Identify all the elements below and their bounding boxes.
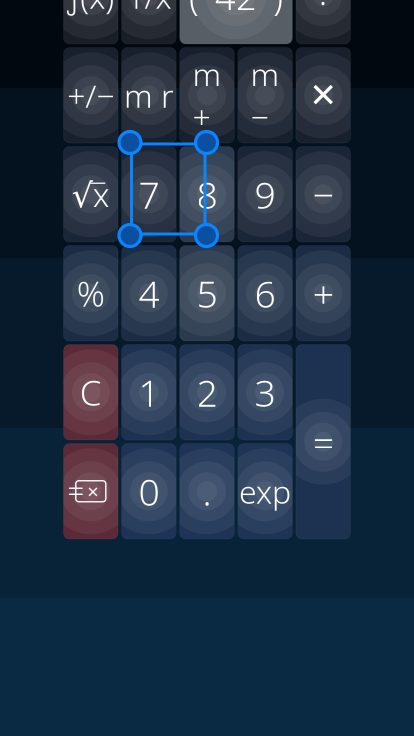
- staticText: 0: [138, 466, 159, 516]
- staticText: 1/x: [126, 0, 171, 17]
- staticText: exp: [239, 470, 291, 512]
- staticText: 42: [215, 0, 257, 20]
- staticText: C: [80, 369, 102, 415]
- button[interactable]: √x: [63, 146, 118, 242]
- staticText: −: [313, 169, 334, 219]
- button[interactable]: −: [296, 146, 350, 242]
- staticText: +: [313, 268, 334, 318]
- staticText: m r: [124, 74, 174, 116]
- button[interactable]: 9: [238, 146, 292, 242]
- staticText: ÷: [313, 0, 334, 20]
- staticText: ×: [87, 478, 98, 505]
- button[interactable]: 0: [122, 443, 176, 539]
- button[interactable]: +/−: [63, 47, 118, 143]
- button[interactable]: m −: [238, 47, 292, 143]
- staticText: (: [189, 0, 199, 20]
- button[interactable]: .: [180, 443, 234, 539]
- button[interactable]: 1: [122, 344, 176, 440]
- staticText: +/−: [67, 74, 114, 116]
- button[interactable]: %: [63, 245, 118, 341]
- staticText: 8: [196, 169, 217, 219]
- button[interactable]: 2: [180, 344, 234, 440]
- staticText: %: [77, 270, 105, 316]
- button[interactable]: 4: [122, 245, 176, 341]
- button[interactable]: =: [296, 344, 350, 539]
- staticText: 1: [138, 367, 159, 417]
- staticText: 4: [138, 268, 159, 318]
- staticText: √x: [72, 172, 110, 216]
- staticText: ✕: [309, 76, 337, 114]
- button[interactable]: C: [63, 344, 118, 440]
- staticText: 7: [138, 169, 159, 219]
- staticText: ƒ(x): [67, 0, 114, 17]
- staticText: ): [273, 0, 283, 20]
- button[interactable]: ✕: [296, 47, 350, 143]
- staticText: 2: [196, 367, 217, 417]
- button[interactable]: 8: [180, 146, 234, 242]
- button[interactable]: (: [180, 0, 292, 44]
- staticText: m +: [192, 53, 221, 138]
- staticText: 6: [255, 268, 276, 318]
- button[interactable]: m r: [122, 47, 176, 143]
- button[interactable]: ƒ(x): [63, 0, 118, 44]
- button[interactable]: Delete: [63, 443, 118, 539]
- staticText: 3: [255, 367, 276, 417]
- button[interactable]: 5: [180, 245, 234, 341]
- button[interactable]: m +: [180, 47, 234, 143]
- button[interactable]: exp: [238, 443, 292, 539]
- staticText: =: [313, 417, 334, 467]
- button[interactable]: ÷: [296, 0, 350, 44]
- button[interactable]: 7: [122, 146, 176, 242]
- staticText: m −: [251, 53, 280, 138]
- button[interactable]: +: [296, 245, 350, 341]
- button[interactable]: 3: [238, 344, 292, 440]
- button[interactable]: 1/x: [122, 0, 176, 44]
- button[interactable]: 6: [238, 245, 292, 341]
- staticText: 9: [255, 169, 276, 219]
- staticText: 5: [196, 268, 217, 318]
- staticText: .: [202, 466, 211, 516]
